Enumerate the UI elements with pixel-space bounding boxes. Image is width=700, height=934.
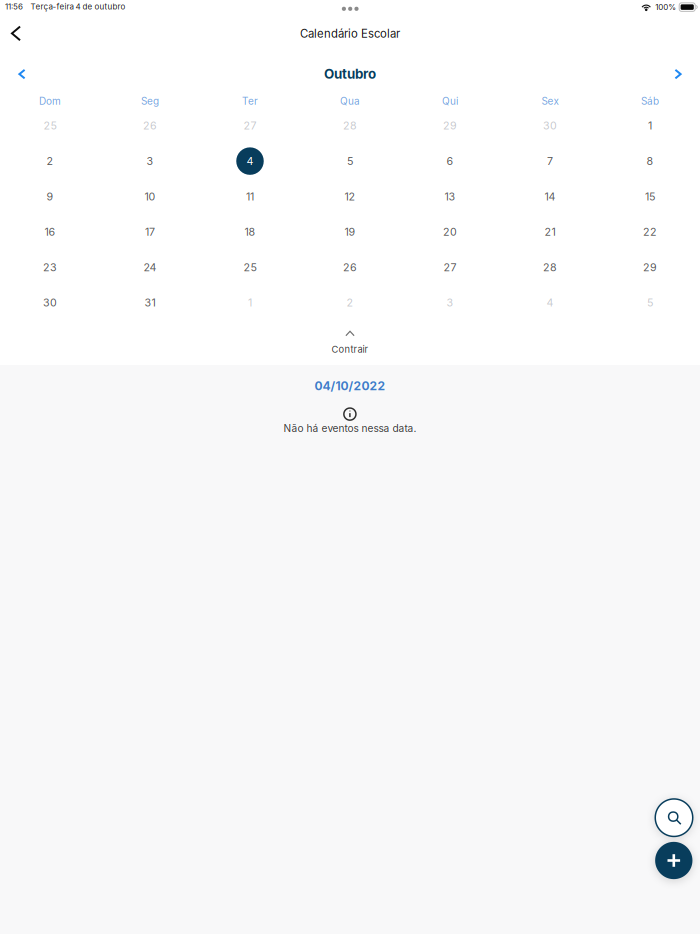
staticText: 11: [246, 190, 254, 203]
button[interactable]: 20: [400, 214, 500, 250]
staticText: 3: [446, 296, 453, 309]
staticText: Não há eventos nessa data.: [283, 422, 416, 435]
staticText: 24: [143, 261, 156, 274]
button[interactable]: 2: [0, 143, 100, 179]
staticText: 27: [443, 261, 456, 274]
staticText: 9: [46, 190, 53, 203]
button[interactable]: 26: [300, 250, 400, 285]
staticText: 5: [647, 296, 653, 309]
staticText: 14: [544, 190, 555, 203]
button[interactable]: 19: [300, 214, 400, 250]
staticText: Calendário Escolar: [300, 27, 400, 40]
staticText: 28: [343, 119, 357, 132]
button[interactable]: 11: [200, 179, 300, 214]
staticText: 26: [143, 119, 157, 132]
button[interactable]: 23: [0, 250, 100, 285]
button[interactable]: 29: [600, 250, 700, 285]
button[interactable]: 18: [200, 214, 300, 250]
staticText: 17: [145, 225, 155, 238]
button[interactable]: 8: [600, 143, 700, 179]
button[interactable]: 17: [100, 214, 200, 250]
staticText: 27: [243, 119, 256, 132]
button[interactable]: 4: [200, 143, 300, 179]
button[interactable]: 29: [400, 108, 500, 143]
staticText: 100%: [655, 2, 676, 12]
button[interactable]: 25: [200, 250, 300, 285]
button[interactable]: 30: [500, 108, 600, 143]
staticText: 5: [347, 155, 353, 167]
staticText: 8: [646, 155, 653, 167]
staticText: 28: [543, 261, 557, 274]
staticText: 18: [244, 225, 255, 238]
staticText: Qua: [340, 95, 360, 107]
button[interactable]: 10: [100, 179, 200, 214]
staticText: 15: [645, 190, 655, 203]
staticText: 20: [443, 225, 457, 238]
button[interactable]: 28: [300, 108, 400, 143]
staticText: 2: [346, 296, 353, 309]
staticText: 23: [43, 261, 57, 274]
button[interactable]: 15: [600, 179, 700, 214]
staticText: 10: [144, 190, 155, 203]
staticText: 21: [544, 225, 555, 238]
staticText: 1: [648, 119, 652, 132]
button[interactable]: 12: [300, 179, 400, 214]
staticText: Terça-feira 4 de outubro: [30, 2, 125, 11]
staticText: 19: [344, 225, 355, 238]
staticText: 25: [243, 261, 256, 274]
staticText: 3: [146, 155, 153, 167]
staticText: 22: [643, 225, 657, 238]
button[interactable]: 1: [600, 108, 700, 143]
button[interactable]: 30: [0, 285, 100, 320]
button[interactable]: 6: [400, 143, 500, 179]
button[interactable]: 21: [500, 214, 600, 250]
button[interactable]: 26: [100, 108, 200, 143]
staticText: 4: [246, 155, 253, 167]
staticText: 12: [344, 190, 355, 203]
staticText: 30: [43, 296, 57, 309]
staticText: 31: [144, 296, 155, 309]
staticText: Contrair: [331, 344, 368, 355]
staticText: 4: [546, 296, 553, 309]
staticText: 7: [547, 155, 553, 167]
button[interactable]: Contrair: [290, 323, 410, 359]
button[interactable]: 16: [0, 214, 100, 250]
button[interactable]: 5: [300, 143, 400, 179]
button[interactable]: 27: [200, 108, 300, 143]
button[interactable]: 13: [400, 179, 500, 214]
staticText: 13: [444, 190, 455, 203]
button[interactable]: 24: [100, 250, 200, 285]
button[interactable]: 27: [400, 250, 500, 285]
staticText: 1: [248, 296, 252, 309]
button[interactable]: 3: [100, 143, 200, 179]
button[interactable]: 25: [0, 108, 100, 143]
staticText: 2: [46, 155, 53, 167]
button[interactable]: Voltar: [0, 16, 33, 50]
button[interactable]: 9: [0, 179, 100, 214]
staticText: Outubro: [324, 66, 376, 82]
button[interactable]: Buscar: [655, 799, 693, 836]
staticText: Seg: [141, 95, 159, 107]
button[interactable]: Adicionar evento: [655, 842, 692, 879]
staticText: Sáb: [641, 95, 659, 107]
staticText: Dom: [39, 95, 61, 107]
staticText: 29: [443, 119, 457, 132]
button[interactable]: 4: [500, 285, 600, 320]
button[interactable]: 7: [500, 143, 600, 179]
staticText: 25: [43, 119, 56, 132]
button[interactable]: 28: [500, 250, 600, 285]
button[interactable]: 22: [600, 214, 700, 250]
button[interactable]: 14: [500, 179, 600, 214]
staticText: 04/10/2022: [314, 378, 385, 393]
staticText: Sex: [541, 95, 558, 107]
button[interactable]: 31: [100, 285, 200, 320]
button[interactable]: Próximo mês: [659, 59, 697, 89]
staticText: Ter: [242, 95, 258, 107]
button[interactable]: Mês anterior: [3, 59, 41, 89]
staticText: 29: [643, 261, 657, 274]
staticText: Qui: [442, 95, 458, 107]
